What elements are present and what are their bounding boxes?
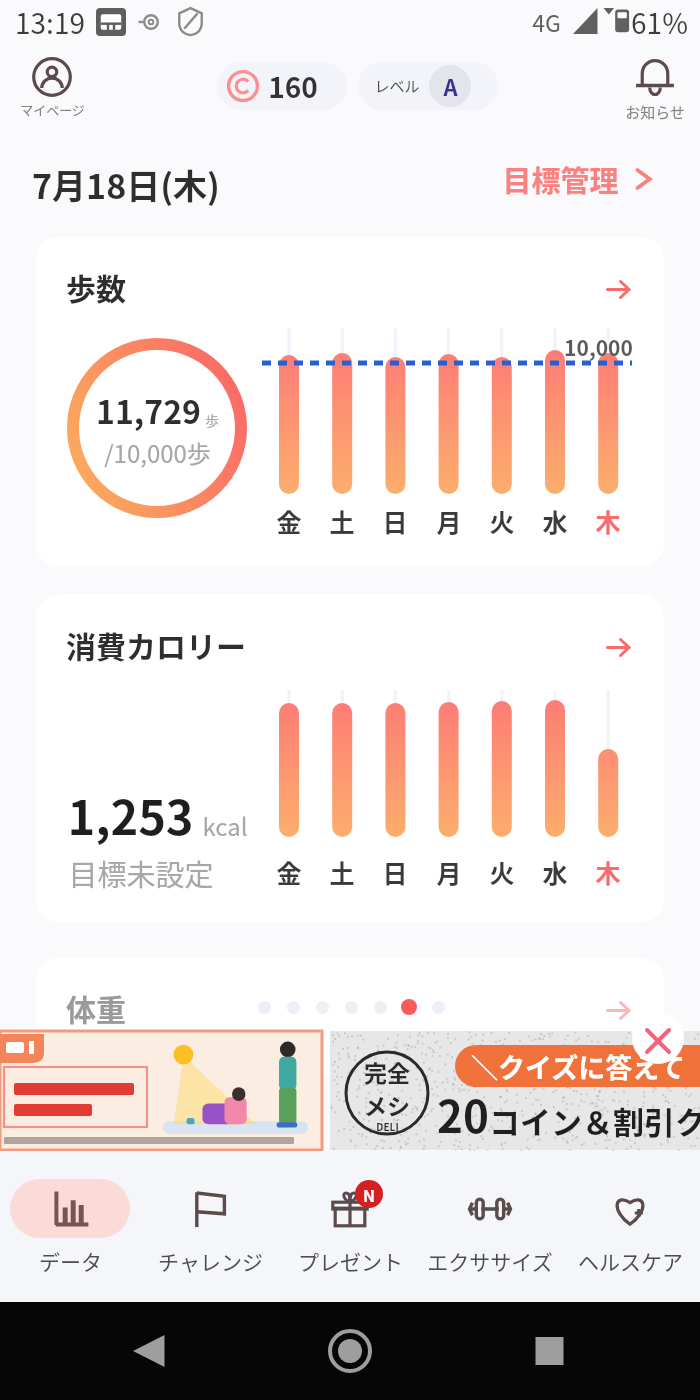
button[interactable]: 消費カロリー [36, 595, 664, 922]
button[interactable]: 体重 詳細 [606, 998, 631, 1023]
button[interactable]: 歩数 [36, 237, 664, 566]
staticText: 消費カロリー [66, 623, 246, 666]
staticText: メシ [364, 1088, 410, 1121]
staticText: マイページ [20, 100, 85, 119]
staticText: ヘルスケア [578, 1246, 683, 1276]
staticText: 歩 [205, 410, 219, 430]
staticText: 7月18日(木) [32, 160, 220, 209]
staticText: 日 [382, 503, 408, 539]
staticText: 11,729 [96, 387, 201, 433]
staticText: 月 [436, 854, 462, 890]
staticText: 水 [542, 854, 568, 890]
button[interactable]: 160 [217, 62, 347, 110]
staticText: N [363, 1183, 375, 1206]
staticText: コイン＆割引ク [489, 1098, 700, 1143]
button[interactable]: 広告 2 [330, 1031, 700, 1150]
button[interactable]: お知らせ Notifications [610, 54, 700, 123]
staticText: kcal [202, 808, 248, 843]
staticText: 61% [631, 2, 688, 43]
staticText: 木 [595, 854, 621, 890]
button[interactable]: ヘルスケア [560, 1151, 700, 1302]
staticText: A [443, 70, 458, 102]
staticText: 火 [489, 854, 515, 890]
staticText: 金 [276, 854, 302, 890]
button[interactable]: 消費カロリー 詳細 [606, 635, 631, 660]
staticText: チャレンジ [158, 1246, 263, 1276]
button[interactable]: N [280, 1151, 420, 1302]
button[interactable]: エクササイズ [420, 1151, 560, 1302]
staticText: レベル [374, 75, 420, 97]
staticText: お知らせ [625, 101, 685, 123]
staticText: 160 [268, 66, 318, 107]
staticText: プレゼント [298, 1246, 403, 1276]
staticText: データ [39, 1246, 102, 1276]
staticText: 木 [595, 503, 621, 539]
staticText: 体重 [66, 986, 126, 1029]
button[interactable]: 広告 1 [0, 1031, 322, 1150]
button[interactable]: 目標管理 [498, 154, 661, 204]
staticText: 水 [542, 503, 568, 539]
staticText: 完全 [364, 1055, 410, 1088]
staticText: エクササイズ [427, 1246, 553, 1276]
staticText: DELI [376, 1119, 399, 1133]
staticText: 歩数 [66, 265, 126, 308]
staticText: 日 [382, 854, 408, 890]
staticText: 10,000 [564, 332, 633, 362]
staticText: 13:19 [15, 2, 85, 43]
button[interactable]: データ [0, 1151, 140, 1302]
staticText: 金 [276, 503, 302, 539]
button[interactable]: 体重 [36, 958, 664, 1078]
staticText: 目標管理 [502, 158, 619, 200]
button[interactable]: 歩数 詳細 [606, 277, 631, 302]
staticText: ＼クイズに答えて [471, 1047, 685, 1086]
staticText: 火 [489, 503, 515, 539]
staticText: 1,253 [67, 780, 194, 848]
button[interactable]: レベル [358, 62, 498, 110]
staticText: 土 [329, 854, 355, 890]
button[interactable]: マイページ My Page [18, 57, 86, 119]
button[interactable]: 閉じる Close [632, 1012, 684, 1064]
staticText: 4G [532, 5, 561, 38]
staticText: /10,000歩 [104, 435, 211, 470]
staticText: 目標未設定 [68, 852, 214, 894]
staticText: 土 [329, 503, 355, 539]
staticText: 月 [436, 503, 462, 539]
button[interactable]: チャレンジ [140, 1151, 280, 1302]
staticText: 20 [437, 1082, 489, 1146]
